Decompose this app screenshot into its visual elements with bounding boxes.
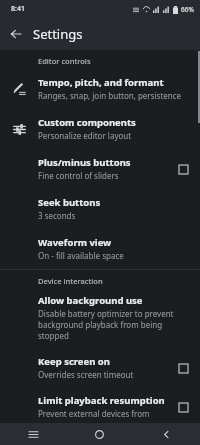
staticText: Allow background use: [38, 294, 143, 307]
staticText: Overrides screen timeout: [38, 369, 134, 380]
staticText: Settings: [33, 25, 83, 43]
staticText: 3 seconds: [38, 210, 76, 221]
button[interactable]: Limit playback resumption: [0, 390, 200, 423]
button[interactable]: Custom components: [0, 111, 200, 151]
button[interactable]: Plus/minus buttons: [174, 160, 192, 178]
staticText: Custom components: [38, 116, 136, 129]
button[interactable]: Seek buttons: [0, 191, 200, 231]
staticText: Fine control of sliders: [38, 170, 119, 181]
button[interactable]: Tempo, pitch, and formant: [0, 72, 200, 111]
button[interactable]: Back: [4, 22, 28, 46]
staticText: Personalize editor layout: [38, 130, 132, 141]
button[interactable]: Limit playback resumption: [174, 398, 192, 416]
button[interactable]: Keep screen on: [0, 351, 200, 390]
staticText: Editor controls: [38, 56, 91, 66]
button[interactable]: Plus/minus buttons: [0, 151, 200, 191]
staticText: Device interaction: [38, 276, 103, 286]
button[interactable]: Home: [66, 423, 133, 445]
staticText: 8:41: [11, 4, 25, 14]
button[interactable]: Waveform view: [0, 231, 200, 269]
staticText: Disable battery optimizer to prevent bac…: [38, 308, 192, 341]
staticText: Limit playback resumption: [38, 394, 165, 407]
staticText: Tempo, pitch, and formant: [38, 76, 164, 89]
staticText: Plus/minus buttons: [38, 156, 131, 169]
staticText: On - fill available space: [38, 250, 124, 261]
staticText: Seek buttons: [38, 196, 101, 209]
staticText: Ranges, snap, join button, persistence: [38, 90, 182, 101]
staticText: 66%: [181, 5, 194, 14]
button[interactable]: Keep screen on: [174, 359, 192, 377]
button[interactable]: Back: [133, 423, 200, 445]
staticText: Keep screen on: [38, 355, 110, 368]
button[interactable]: Allow background use: [0, 292, 200, 351]
staticText: Waveform view: [38, 236, 112, 249]
staticText: Prevent external devices from starting p…: [38, 408, 170, 419]
button[interactable]: Recents: [0, 423, 66, 445]
